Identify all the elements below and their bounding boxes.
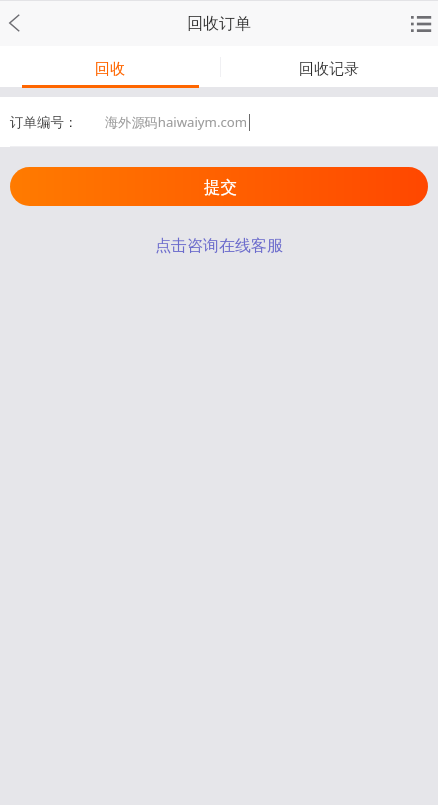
- staticText: 点击咨询在线客服: [155, 236, 283, 256]
- staticText: 海外源码haiwaiym.com: [105, 113, 248, 131]
- staticText: 回收记录: [299, 60, 359, 79]
- button[interactable]: Back: [0, 0, 40, 46]
- button[interactable]: Order list: [394, 0, 438, 46]
- button[interactable]: 回收: [0, 46, 219, 87]
- button[interactable]: 提交: [10, 167, 428, 206]
- staticText: 提交: [204, 177, 237, 198]
- staticText: 回收订单: [187, 14, 251, 34]
- button[interactable]: 点击咨询在线客服: [147, 234, 291, 258]
- staticText: 订单编号：: [10, 114, 78, 131]
- button[interactable]: 回收记录: [219, 46, 438, 87]
- staticText: 回收: [95, 60, 125, 79]
